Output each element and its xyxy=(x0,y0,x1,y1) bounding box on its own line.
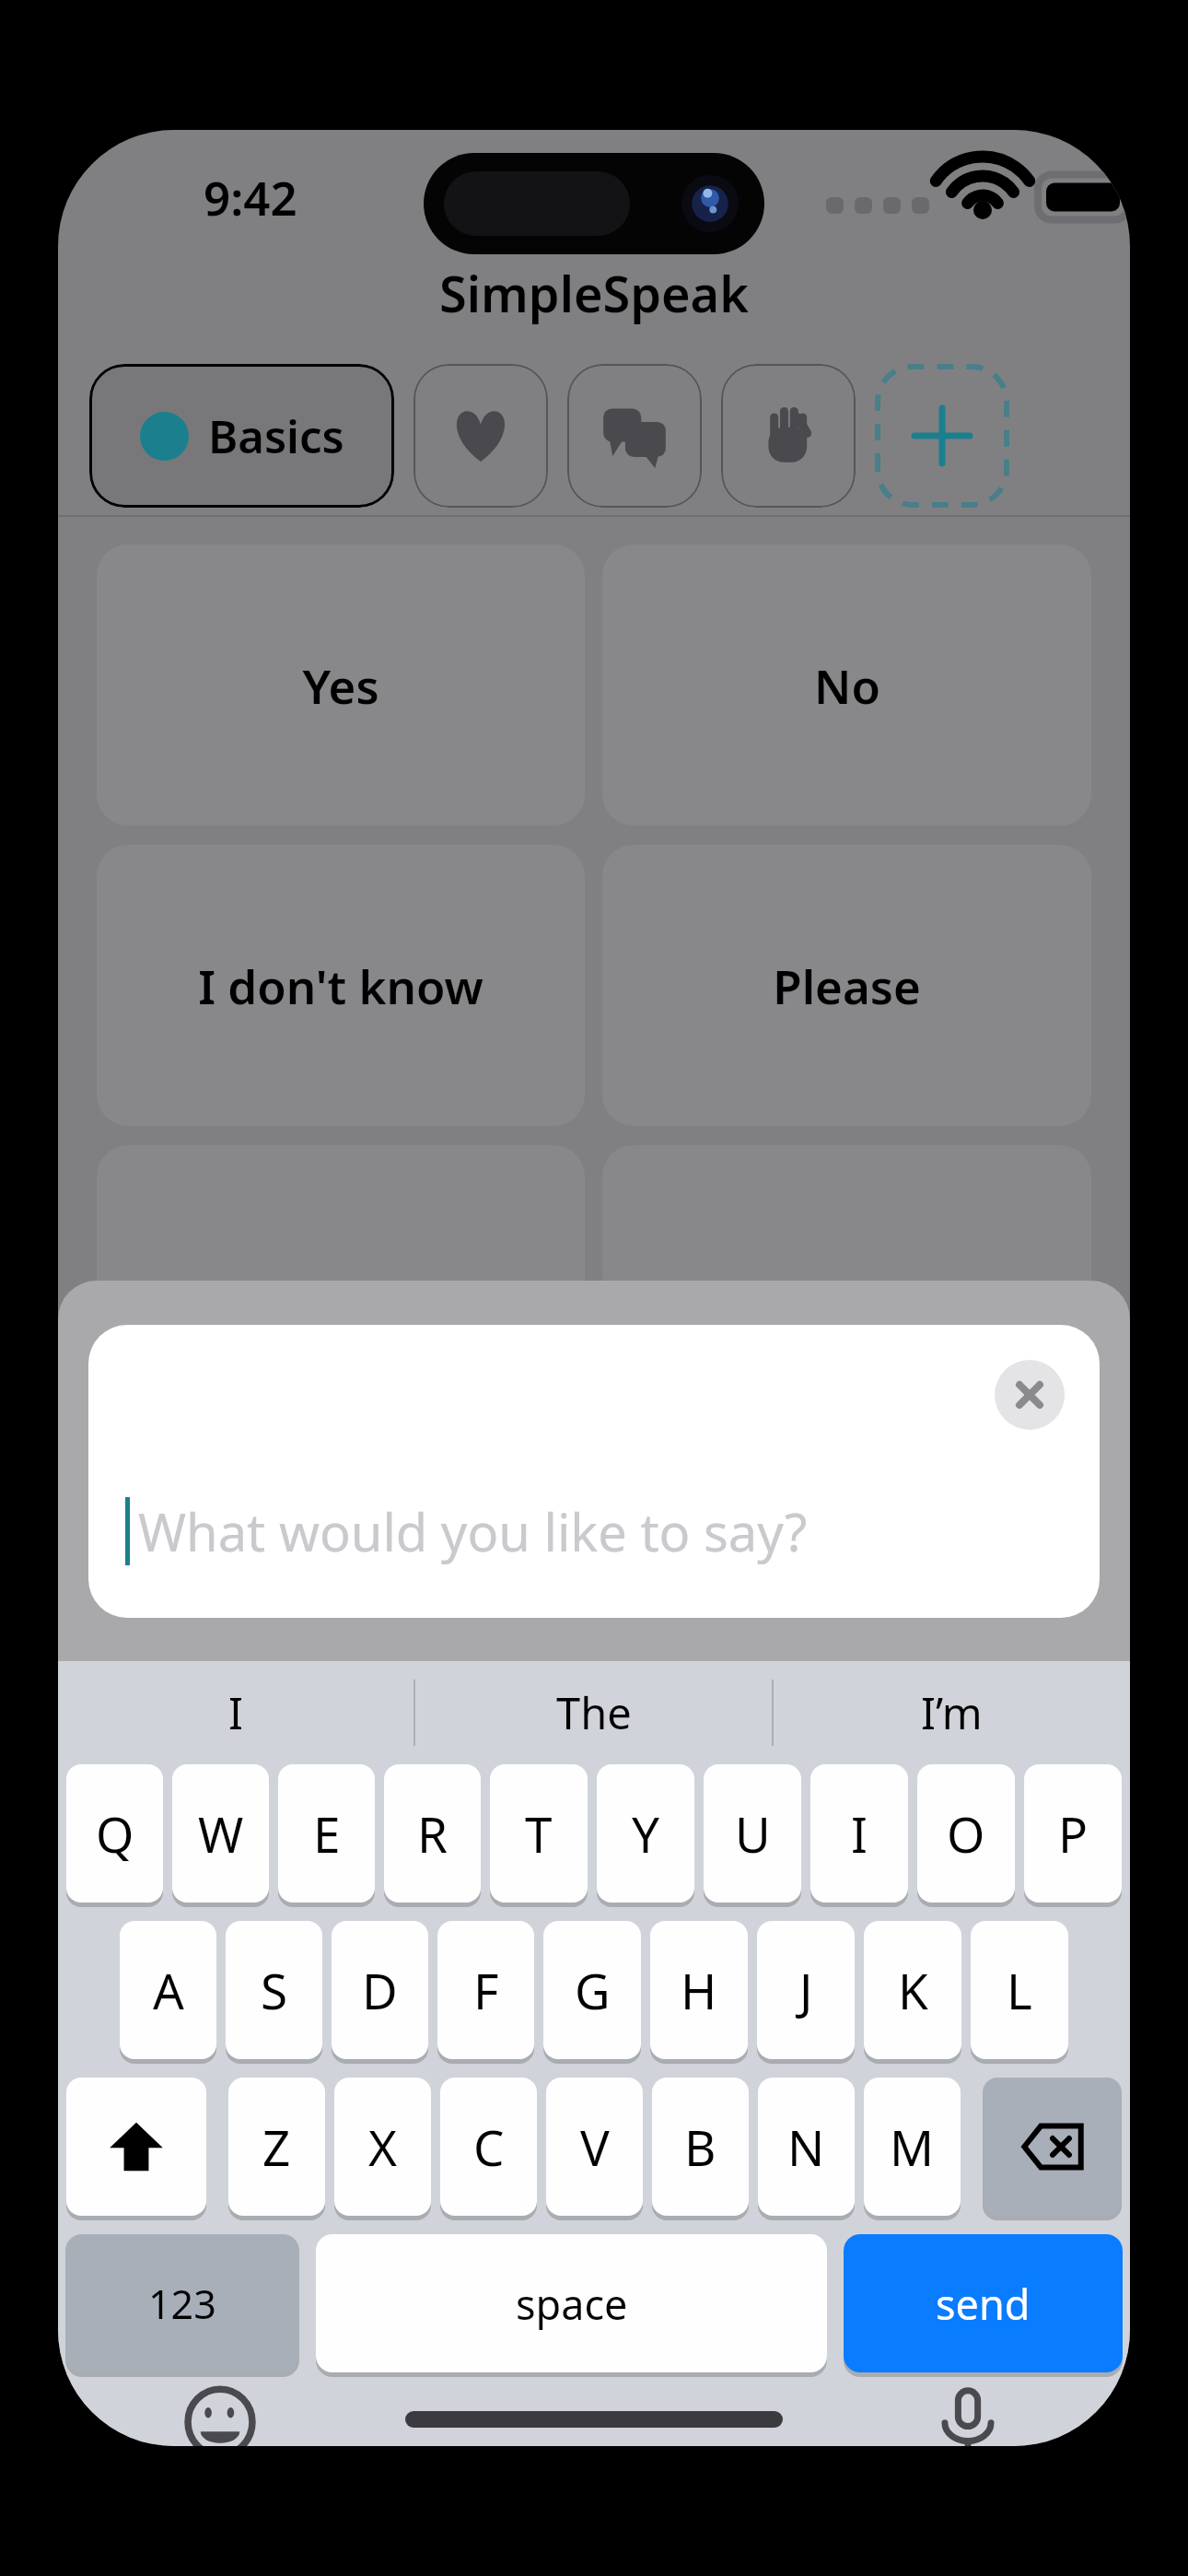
button[interactable] xyxy=(97,1145,585,1426)
button[interactable]: D xyxy=(332,1921,428,2059)
staticText: E xyxy=(313,1800,341,1867)
staticText: O xyxy=(947,1800,985,1867)
button[interactable]: Close xyxy=(995,1360,1065,1430)
button[interactable]: Yes xyxy=(97,544,585,825)
button[interactable]: I’m xyxy=(774,1661,1130,1764)
button[interactable]: U xyxy=(704,1764,801,1903)
staticText: Yes xyxy=(302,653,379,717)
staticText: space xyxy=(516,2276,628,2332)
staticText: What would you like to say? xyxy=(138,1496,808,1566)
button[interactable]: V xyxy=(546,2078,643,2216)
button[interactable]: Needs xyxy=(721,364,856,508)
staticText: Q xyxy=(96,1800,134,1867)
staticText: The xyxy=(556,1683,632,1742)
button[interactable]: Shift xyxy=(66,2078,206,2216)
staticText: No xyxy=(814,653,880,717)
button[interactable]: R xyxy=(384,1764,481,1903)
button[interactable] xyxy=(602,1145,1091,1426)
staticText: Y xyxy=(632,1800,659,1867)
button[interactable]: space xyxy=(316,2234,827,2372)
button[interactable]: X xyxy=(334,2078,431,2216)
button[interactable]: The xyxy=(415,1661,772,1764)
button[interactable]: Q xyxy=(66,1764,163,1903)
staticText: G xyxy=(575,1957,611,2023)
button[interactable]: Please xyxy=(602,845,1091,1126)
button[interactable]: P xyxy=(1024,1764,1122,1903)
button[interactable]: L xyxy=(971,1921,1068,2059)
staticText: send xyxy=(936,2276,1031,2332)
button[interactable]: Favourites xyxy=(413,364,548,508)
button[interactable]: H xyxy=(650,1921,748,2059)
staticText: X xyxy=(368,2113,398,2180)
button[interactable]: Dictation xyxy=(927,2385,1008,2446)
staticText: I xyxy=(228,1683,243,1742)
staticText: I’m xyxy=(921,1683,983,1742)
button[interactable]: J xyxy=(757,1921,855,2059)
staticText: L xyxy=(1007,1957,1032,2023)
staticText: 9:42 xyxy=(204,165,297,228)
staticText: U xyxy=(735,1800,771,1867)
button[interactable]: T xyxy=(490,1764,588,1903)
staticText: 123 xyxy=(148,2277,216,2331)
staticText: T xyxy=(525,1800,553,1867)
staticText: Z xyxy=(262,2113,291,2180)
staticText: Basics xyxy=(208,405,344,467)
staticText: C xyxy=(473,2113,505,2180)
staticText: R xyxy=(417,1800,448,1867)
button[interactable]: Basics xyxy=(89,364,394,508)
button[interactable]: S xyxy=(226,1921,322,2059)
staticText: P xyxy=(1058,1800,1089,1867)
button[interactable]: N xyxy=(758,2078,855,2216)
button[interactable]: send xyxy=(844,2234,1123,2372)
button[interactable]: 123 xyxy=(65,2234,299,2372)
button[interactable]: M xyxy=(864,2078,961,2216)
staticText: M xyxy=(890,2113,935,2180)
button[interactable]: Add category xyxy=(875,364,1009,508)
staticText: S xyxy=(261,1957,288,2023)
button[interactable]: Y xyxy=(597,1764,694,1903)
button[interactable]: No xyxy=(602,544,1091,825)
staticText: I don't know xyxy=(198,954,483,1017)
button[interactable]: F xyxy=(437,1921,534,2059)
button[interactable]: I don't know xyxy=(97,845,585,1126)
staticText: A xyxy=(153,1957,184,2023)
button[interactable]: B xyxy=(652,2078,749,2216)
button[interactable]: O xyxy=(917,1764,1015,1903)
button[interactable]: I xyxy=(58,1661,413,1764)
staticText: W xyxy=(198,1800,244,1867)
staticText: K xyxy=(898,1957,928,2023)
button[interactable]: Z xyxy=(228,2078,325,2216)
button[interactable]: C xyxy=(440,2078,537,2216)
staticText: V xyxy=(580,2113,610,2180)
staticText: SimpleSpeak xyxy=(439,259,749,327)
button[interactable]: E xyxy=(278,1764,375,1903)
button[interactable]: What would you like to say? xyxy=(88,1325,1100,1618)
button[interactable]: W xyxy=(172,1764,269,1903)
staticText: N xyxy=(787,2113,825,2180)
button[interactable]: I xyxy=(810,1764,908,1903)
staticText: D xyxy=(362,1957,398,2023)
button[interactable]: Backspace xyxy=(983,2078,1122,2216)
staticText: B xyxy=(684,2113,716,2180)
button[interactable]: Emoji xyxy=(180,2385,261,2446)
button[interactable]: G xyxy=(543,1921,641,2059)
staticText: Please xyxy=(773,954,921,1017)
staticText: J xyxy=(799,1957,813,2023)
staticText: F xyxy=(473,1957,499,2023)
staticText: H xyxy=(681,1957,717,2023)
staticText: I xyxy=(851,1800,868,1867)
button[interactable]: K xyxy=(864,1921,961,2059)
button[interactable]: Conversation xyxy=(567,364,702,508)
button[interactable]: A xyxy=(120,1921,216,2059)
